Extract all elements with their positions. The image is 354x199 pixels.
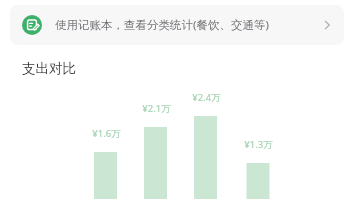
other: 查看分类统计: [320, 18, 334, 32]
staticText: 支出对比: [22, 60, 76, 77]
staticText: ¥1.3万: [244, 138, 273, 151]
staticText: ¥2.1万: [142, 102, 171, 115]
staticText: ¥2.4万: [192, 91, 221, 104]
staticText: ¥1.6万: [92, 127, 121, 140]
staticText: 使用记账本，查看分类统计(餐饮、交通等): [55, 17, 269, 33]
button[interactable]: 使用记账本，查看分类统计(餐饮、交通等): [10, 5, 344, 45]
